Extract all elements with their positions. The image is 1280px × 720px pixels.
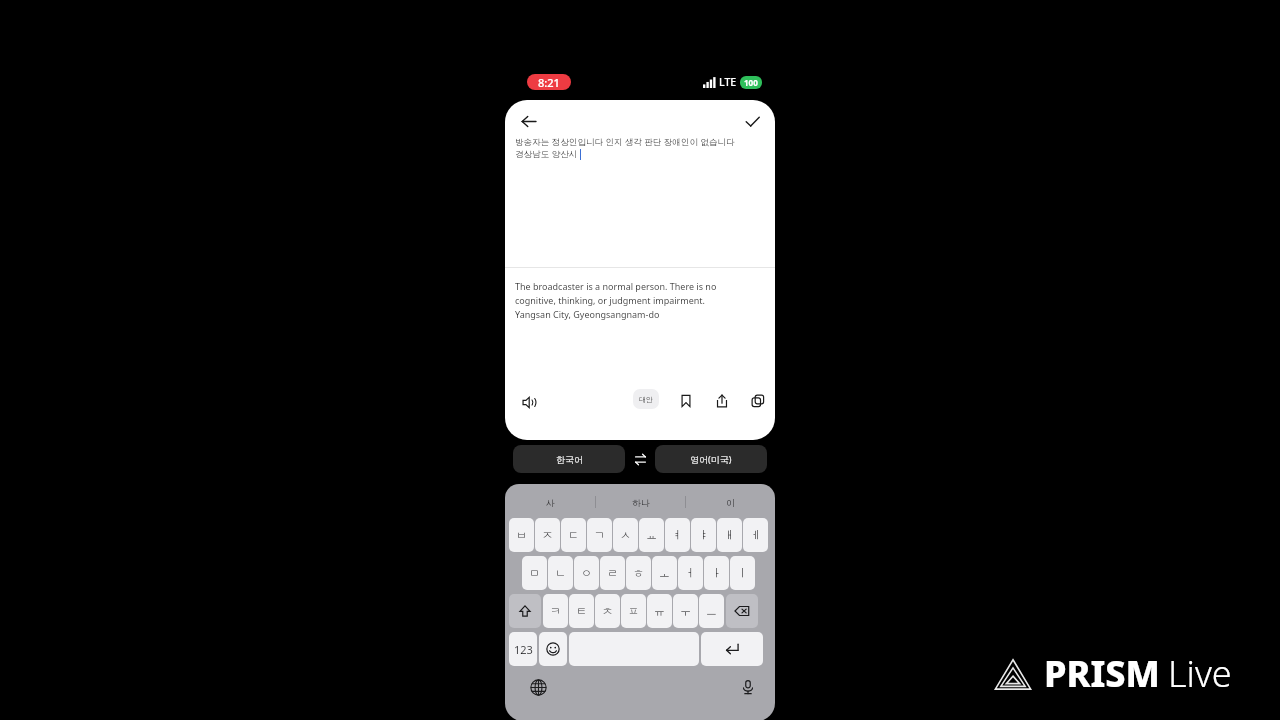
button[interactable]: ㅔ bbox=[743, 518, 768, 552]
button[interactable]: Copy bbox=[743, 386, 773, 416]
button[interactable]: ㅋ bbox=[543, 594, 568, 628]
staticText: ㅎ bbox=[633, 566, 644, 580]
staticText: ㅈ bbox=[542, 528, 553, 542]
staticText: The broadcaster is a normal person. Ther… bbox=[515, 280, 765, 320]
button[interactable]: Backspace bbox=[726, 594, 758, 628]
button[interactable]: Shift bbox=[509, 594, 541, 628]
staticText: ㅠ bbox=[654, 604, 665, 618]
staticText: 방송자는 정상인입니다 인지 생각 판단 장애인이 없습니다 bbox=[515, 136, 735, 148]
staticText: 100 bbox=[744, 77, 758, 88]
staticText: 한국어 bbox=[556, 454, 583, 465]
staticText: ㅌ bbox=[576, 604, 587, 618]
staticText: 123 bbox=[514, 642, 533, 657]
staticText: 영어(미국) bbox=[690, 453, 732, 465]
button[interactable]: 하나 bbox=[596, 490, 685, 514]
staticText: ㅡ bbox=[706, 604, 717, 618]
button[interactable]: ㅂ bbox=[509, 518, 534, 552]
staticText: ㅋ bbox=[550, 604, 561, 618]
button[interactable]: 123 bbox=[509, 632, 537, 666]
button[interactable] bbox=[569, 632, 699, 666]
button[interactable]: 영어(미국) bbox=[655, 445, 767, 473]
button[interactable]: ㅎ bbox=[626, 556, 651, 590]
staticText: 하나 bbox=[632, 497, 650, 508]
button[interactable]: 사 bbox=[505, 490, 595, 514]
button[interactable]: ㄱ bbox=[587, 518, 612, 552]
staticText: LTE bbox=[719, 75, 737, 89]
staticText: ㄹ bbox=[607, 566, 618, 580]
button[interactable]: ㅣ bbox=[730, 556, 755, 590]
button[interactable]: ㅈ bbox=[535, 518, 560, 552]
staticText: ㄱ bbox=[594, 528, 605, 542]
staticText: 사 bbox=[546, 497, 555, 508]
staticText: ㅓ bbox=[685, 566, 696, 580]
button[interactable]: ㅊ bbox=[595, 594, 620, 628]
staticText: ㄴ bbox=[555, 566, 566, 580]
staticText: ㅛ bbox=[646, 528, 657, 542]
button[interactable]: Enter bbox=[701, 632, 763, 666]
staticText: 이 bbox=[726, 497, 735, 508]
button[interactable]: Listen bbox=[513, 386, 545, 418]
button[interactable]: Share bbox=[707, 386, 737, 416]
button[interactable]: ㅇ bbox=[574, 556, 599, 590]
button[interactable]: ㅍ bbox=[621, 594, 646, 628]
button[interactable]: ㅛ bbox=[639, 518, 664, 552]
staticText: ㅔ bbox=[750, 528, 761, 542]
button[interactable]: ㅕ bbox=[665, 518, 690, 552]
staticText: ㅁ bbox=[529, 566, 540, 580]
staticText: 8:21 bbox=[538, 75, 560, 90]
button[interactable]: 이 bbox=[686, 490, 775, 514]
button[interactable]: ㅡ bbox=[699, 594, 724, 628]
staticText: ㅣ bbox=[737, 566, 748, 580]
button[interactable]: 대안 bbox=[633, 389, 659, 409]
button[interactable]: ㄹ bbox=[600, 556, 625, 590]
button[interactable]: ㅁ bbox=[522, 556, 547, 590]
button[interactable]: Swap languages bbox=[625, 445, 655, 473]
staticText: PRISM bbox=[1044, 649, 1160, 698]
staticText: 대안 bbox=[639, 395, 653, 404]
button[interactable]: ㅗ bbox=[652, 556, 677, 590]
button[interactable]: Change keyboard bbox=[523, 672, 553, 702]
staticText: ㅜ bbox=[680, 604, 691, 618]
button[interactable]: ㅓ bbox=[678, 556, 703, 590]
button[interactable]: Emoji bbox=[539, 632, 567, 666]
button[interactable]: ㅅ bbox=[613, 518, 638, 552]
staticText: Live bbox=[1168, 649, 1232, 698]
button[interactable]: Voice input bbox=[733, 672, 763, 702]
staticText: ㅑ bbox=[698, 528, 709, 542]
button[interactable]: ㅠ bbox=[647, 594, 672, 628]
button[interactable]: Back bbox=[513, 106, 543, 136]
button[interactable]: ㅑ bbox=[691, 518, 716, 552]
staticText: ㅂ bbox=[516, 528, 527, 542]
staticText: 경상남도 양산시 bbox=[515, 148, 578, 160]
staticText: ㄷ bbox=[568, 528, 579, 542]
staticText: ㅊ bbox=[602, 604, 613, 618]
button[interactable]: ㅌ bbox=[569, 594, 594, 628]
staticText: ㅐ bbox=[724, 528, 735, 542]
staticText: ㅇ bbox=[581, 566, 592, 580]
button[interactable]: 한국어 bbox=[513, 445, 625, 473]
staticText: ㅏ bbox=[711, 566, 722, 580]
button[interactable]: ㅏ bbox=[704, 556, 729, 590]
staticText: ㅕ bbox=[672, 528, 683, 542]
staticText: ㅍ bbox=[628, 604, 639, 618]
staticText: ㅗ bbox=[659, 566, 670, 580]
button[interactable]: ㅜ bbox=[673, 594, 698, 628]
button[interactable]: ㅐ bbox=[717, 518, 742, 552]
button[interactable]: Done bbox=[737, 106, 767, 136]
button[interactable]: ㄴ bbox=[548, 556, 573, 590]
button[interactable]: Save bbox=[671, 386, 701, 416]
button[interactable]: ㄷ bbox=[561, 518, 586, 552]
staticText: ㅅ bbox=[620, 528, 631, 542]
